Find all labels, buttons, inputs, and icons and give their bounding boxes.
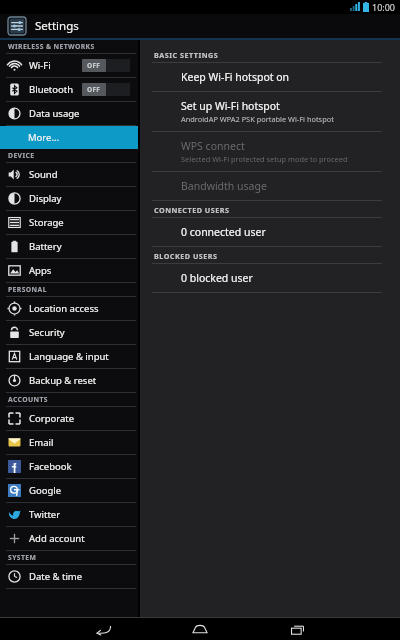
staticText: Settings — [35, 18, 79, 34]
button[interactable]: Add account — [0, 527, 138, 550]
staticText: Backup & reset — [29, 374, 97, 387]
staticText: Google — [29, 484, 62, 497]
button[interactable]: More... — [0, 126, 138, 149]
staticText: Display — [29, 192, 62, 205]
button[interactable]: Backup & reset — [0, 369, 138, 392]
staticText: Wi-Fi — [29, 59, 51, 72]
button[interactable]: Bluetooth — [0, 78, 138, 101]
button[interactable]: Language & input — [0, 345, 138, 368]
staticText: CONNECTED USERS — [154, 205, 230, 215]
button[interactable]: Facebook — [0, 455, 138, 478]
staticText: Corporate — [29, 412, 75, 425]
staticText: BASIC SETTINGS — [154, 50, 219, 60]
staticText: Keep Wi-Fi hotspot on — [181, 70, 290, 84]
staticText: PERSONAL — [8, 285, 47, 294]
button[interactable]: Email — [0, 431, 138, 454]
staticText: SYSTEM — [8, 553, 37, 562]
staticText: DEVICE — [8, 151, 35, 160]
staticText: OFF — [87, 61, 101, 70]
button[interactable]: Sound — [0, 163, 138, 186]
staticText: Email — [29, 436, 54, 449]
button[interactable]: Date & time — [0, 565, 138, 588]
staticText: WIRELESS & NETWORKS — [8, 42, 95, 51]
staticText: 10:00 — [372, 1, 396, 13]
button[interactable]: Apps — [0, 259, 138, 282]
staticText: Security — [29, 326, 65, 339]
button[interactable]: Keep Wi-Fi hotspot on — [140, 63, 400, 91]
staticText: Selected Wi-Fi protected setup mode to p… — [181, 154, 348, 164]
button[interactable]: Storage — [0, 211, 138, 234]
staticText: AndroidAP WPA2 PSK portable Wi-Fi hotspo… — [181, 114, 334, 124]
staticText: Sound — [29, 168, 58, 181]
button[interactable]: Toggle off — [82, 59, 130, 72]
staticText: Battery — [29, 240, 62, 253]
button[interactable]: Bandwidth usage — [140, 172, 400, 200]
button[interactable]: Security — [0, 321, 138, 344]
staticText: More... — [28, 131, 60, 144]
staticText: OFF — [87, 85, 101, 94]
staticText: WPS connect — [181, 139, 245, 153]
button[interactable]: Home — [183, 618, 217, 640]
button[interactable]: Back — [86, 618, 120, 640]
button[interactable]: 0 connected user — [140, 218, 400, 246]
button[interactable]: Toggle off — [82, 83, 130, 96]
button[interactable]: Battery — [0, 235, 138, 258]
button[interactable]: Google — [0, 479, 138, 502]
staticText: Data usage — [29, 107, 80, 120]
button[interactable]: 0 blocked user — [140, 264, 400, 292]
button[interactable]: Wi-Fi — [0, 54, 138, 77]
button[interactable]: WPS connect — [140, 132, 400, 171]
staticText: Storage — [29, 216, 64, 229]
staticText: Facebook — [29, 460, 72, 473]
button[interactable]: Corporate — [0, 407, 138, 430]
staticText: Bandwidth usage — [181, 179, 267, 193]
button[interactable]: Set up Wi-Fi hotspot — [140, 92, 400, 131]
staticText: Language & input — [29, 350, 109, 363]
staticText: Bluetooth — [29, 83, 74, 96]
button[interactable]: Recent apps — [280, 618, 314, 640]
button[interactable]: Twitter — [0, 503, 138, 526]
staticText: Date & time — [29, 570, 83, 583]
button[interactable]: Data usage — [0, 102, 138, 125]
button[interactable]: Display — [0, 187, 138, 210]
button[interactable]: Location access — [0, 297, 138, 320]
staticText: BLOCKED USERS — [154, 251, 218, 261]
staticText: Set up Wi-Fi hotspot — [181, 99, 280, 113]
staticText: ACCOUNTS — [8, 395, 48, 404]
staticText: Apps — [29, 264, 52, 277]
staticText: Twitter — [29, 508, 61, 521]
staticText: Add account — [29, 532, 85, 545]
staticText: Location access — [29, 302, 99, 315]
staticText: 0 blocked user — [181, 271, 253, 285]
staticText: 0 connected user — [181, 225, 266, 239]
